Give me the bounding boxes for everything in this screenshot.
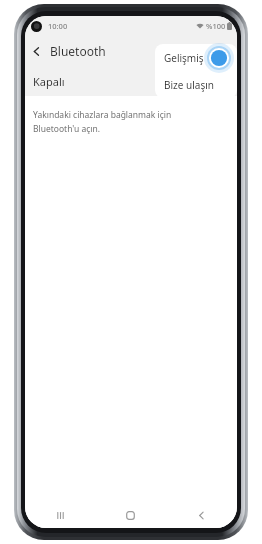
- button[interactable]: Bize ulaşın: [155, 71, 237, 98]
- staticText: 10:00: [48, 21, 68, 31]
- staticText: Yakındaki cihazlara bağlanmak için: [33, 109, 172, 121]
- staticText: Gelişmiş: [164, 51, 204, 65]
- staticText: Kapalı: [33, 74, 65, 89]
- button[interactable]: Home: [95, 502, 166, 528]
- staticText: Bluetooth'u açın.: [33, 123, 101, 135]
- button[interactable]: Recent apps: [25, 502, 95, 528]
- staticText: Bize ulaşın: [164, 78, 214, 92]
- button[interactable]: Back: [25, 40, 47, 62]
- button[interactable]: Back: [166, 502, 237, 528]
- button[interactable]: Tap indicator: [204, 43, 234, 73]
- button[interactable]: Kapalı: [25, 66, 237, 96]
- button[interactable]: Gelişmiş: [155, 44, 237, 71]
- staticText: %100: [206, 21, 226, 31]
- staticText: Bluetooth: [50, 43, 106, 59]
